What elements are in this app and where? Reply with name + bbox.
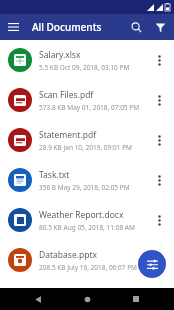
button[interactable]: Search: [124, 15, 148, 39]
staticText: 208.5 KB July 16, 2018, 06:07 PM: [39, 263, 138, 272]
button[interactable]: Task.txt: [0, 160, 174, 200]
button[interactable]: More options: [148, 129, 170, 151]
staticText: Database.pptx: [39, 249, 97, 261]
staticText: Scan Files.pdf: [39, 89, 94, 101]
button[interactable]: Database.pptx: [0, 240, 174, 280]
button[interactable]: Scan Files.pdf: [0, 80, 174, 120]
staticText: 573.8 KB May 01, 2018, 07:05 PM: [39, 103, 140, 112]
button[interactable]: Home: [76, 288, 98, 310]
staticText: 5.5 KB Oct 09, 2018, 03:10 PM: [39, 63, 130, 72]
button[interactable]: Sort and filter options: [138, 250, 166, 278]
button[interactable]: Statement.pdf: [0, 120, 174, 160]
staticText: Statement.pdf: [39, 129, 97, 141]
button[interactable]: Weather Report.docx: [0, 200, 174, 240]
staticText: 28.9 KB Jan 10, 2019, 09:01 PM: [39, 143, 132, 152]
staticText: Weather Report.docx: [39, 209, 124, 221]
staticText: All Documents: [32, 20, 124, 34]
staticText: 80.5 KB Aug 05, 2018, 11:08 AM: [39, 223, 135, 232]
button[interactable]: Filter: [148, 15, 172, 39]
staticText: 356 B May 29, 2018, 02:05 PM: [39, 183, 130, 192]
button[interactable]: Back: [27, 288, 49, 310]
button[interactable]: More options: [148, 49, 170, 71]
button[interactable]: Salary.xlsx: [0, 40, 174, 80]
staticText: Task.txt: [39, 169, 70, 181]
button[interactable]: More options: [148, 89, 170, 111]
button[interactable]: Recent apps: [125, 288, 147, 310]
button[interactable]: More options: [148, 249, 170, 271]
button[interactable]: Open navigation menu: [0, 14, 26, 40]
staticText: Salary.xlsx: [39, 49, 81, 61]
button[interactable]: More options: [148, 169, 170, 191]
button[interactable]: More options: [148, 209, 170, 231]
